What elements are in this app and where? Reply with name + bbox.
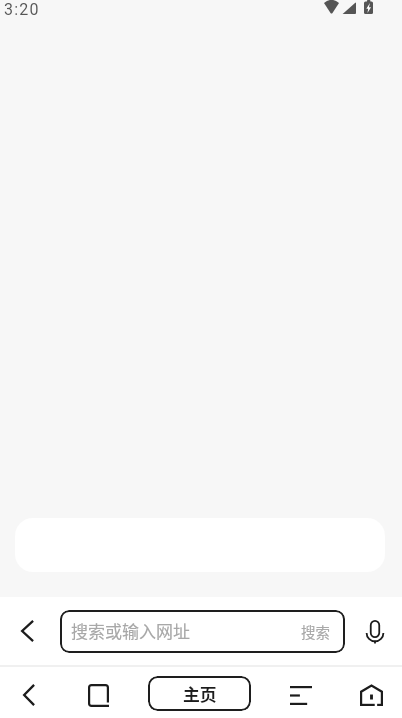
button[interactable]: 搜索或输入网址 [60, 610, 345, 653]
button[interactable]: Voice search [351, 607, 399, 655]
staticText: 搜索或输入网址 [71, 618, 190, 643]
button[interactable]: 主页 [148, 676, 251, 711]
button[interactable]: Back [3, 607, 51, 655]
button[interactable]: Tabs [73, 670, 123, 718]
button[interactable]: Home [346, 670, 396, 718]
staticText: 主页 [183, 682, 217, 706]
button[interactable]: Menu [276, 670, 326, 718]
button[interactable]: Back [4, 670, 54, 718]
staticText: 3:20 [4, 0, 40, 19]
staticText: 搜索 [301, 621, 330, 642]
